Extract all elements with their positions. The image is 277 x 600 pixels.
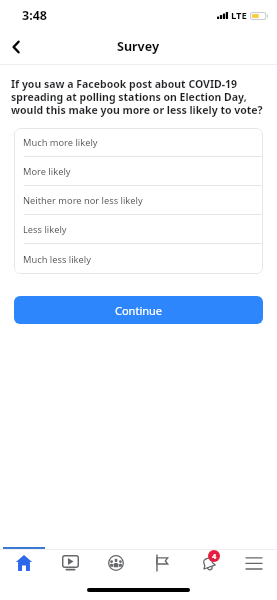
- button[interactable]: Home: [0, 541, 47, 579]
- staticText: Continue: [115, 303, 163, 318]
- button[interactable]: Much more likely: [14, 128, 263, 156]
- button[interactable]: Pages: [139, 541, 185, 579]
- staticText: More likely: [23, 165, 71, 178]
- button[interactable]: Less likely: [14, 215, 263, 243]
- staticText: LTE: [231, 9, 247, 22]
- staticText: Much more likely: [23, 136, 98, 149]
- staticText: Less likely: [23, 223, 67, 236]
- staticText: Survey: [117, 38, 160, 55]
- staticText: If you saw a Facebook post about COVID-1…: [11, 77, 266, 117]
- button[interactable]: Groups: [93, 541, 139, 579]
- button[interactable]: Much less likely: [14, 244, 263, 274]
- staticText: Neither more nor less likely: [23, 194, 143, 207]
- staticText: 4: [212, 551, 217, 561]
- staticText: 3:48: [22, 7, 47, 24]
- button[interactable]: More likely: [14, 157, 263, 185]
- button[interactable]: Neither more nor less likely: [14, 186, 263, 214]
- button[interactable]: Menu: [231, 541, 277, 579]
- button[interactable]: Continue: [14, 296, 263, 324]
- button[interactable]: Back: [0, 31, 32, 63]
- staticText: Much less likely: [23, 253, 91, 266]
- button[interactable]: Watch: [47, 541, 93, 579]
- button[interactable]: Notifications: [185, 541, 231, 579]
